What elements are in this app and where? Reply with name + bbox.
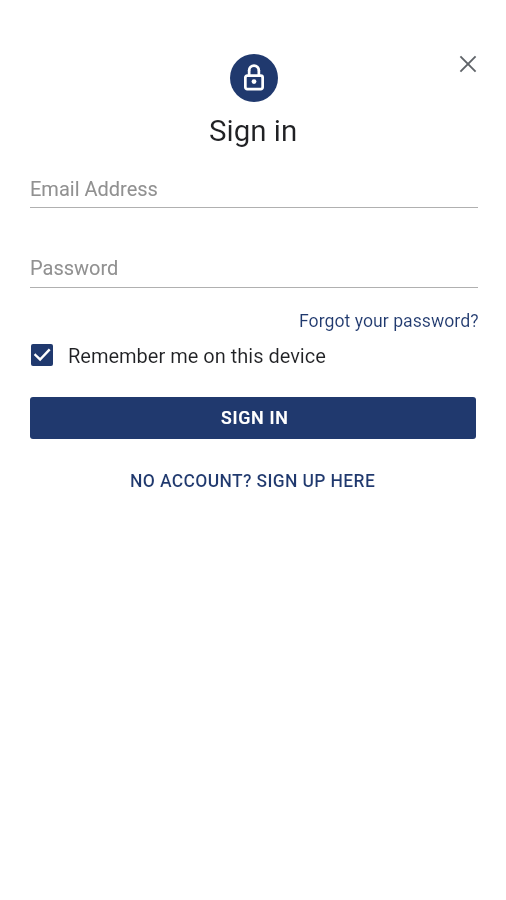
button[interactable]: NO ACCOUNT? SIGN UP HERE: [130, 471, 376, 492]
button[interactable]: Remember me on this device: [31, 344, 326, 366]
staticText: NO ACCOUNT? SIGN UP HERE: [130, 471, 376, 492]
staticText: Email Address: [30, 177, 158, 200]
button[interactable]: Close: [444, 40, 492, 88]
staticText: Forgot your password?: [299, 311, 479, 332]
staticText: SIGN IN: [221, 407, 289, 428]
staticText: Remember me on this device: [68, 344, 326, 366]
button[interactable]: SIGN IN: [30, 397, 476, 439]
staticText: Password: [30, 256, 119, 279]
button[interactable]: Password: [30, 256, 478, 279]
button[interactable]: Email Address: [30, 177, 478, 200]
button[interactable]: Forgot your password?: [299, 311, 479, 332]
staticText: Sign in: [209, 114, 298, 149]
